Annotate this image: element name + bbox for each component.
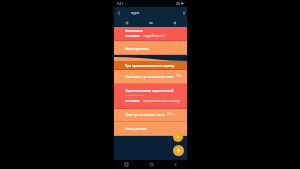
staticText: Идти до системных окон: [125, 112, 165, 116]
staticText: значение: [125, 99, 141, 103]
staticText: 4G: [176, 2, 180, 6]
staticText: Приостановить переменной: [125, 88, 174, 92]
button[interactable]: Play: [173, 132, 183, 142]
button[interactable]: Повторить до системных окон: [114, 70, 187, 84]
button[interactable]: Три прикосновения к экрану: [114, 61, 187, 70]
staticText: Всего данных: [125, 46, 149, 50]
staticText: прикосновение к экрану: [143, 99, 180, 103]
button[interactable]: Recents: [114, 160, 139, 169]
button[interactable]: Идти до системных окон: [114, 109, 187, 122]
button[interactable]: More options: [181, 7, 187, 18]
staticText: 13 с: [176, 74, 182, 78]
button[interactable]: Всего данных: [114, 41, 187, 55]
staticText: значение: [125, 34, 141, 38]
staticText: Три прикосновения к экрану: [125, 63, 175, 67]
button[interactable]: Add: [173, 145, 184, 156]
staticText: Повторить до системных окон: [125, 74, 174, 78]
button[interactable]: Заголовок: [114, 27, 187, 41]
staticText: Заголовок: [125, 28, 143, 32]
button[interactable]: Back: [114, 7, 123, 18]
button[interactable]: Всего данных: [114, 122, 187, 136]
staticText: 13 с: [167, 112, 173, 116]
button[interactable]: Pause: [114, 18, 139, 27]
button[interactable]: Приостановить переменной: [114, 84, 187, 109]
staticText: курс: [131, 10, 140, 15]
button[interactable]: Volume: [163, 18, 187, 27]
staticText: состояние, они: [125, 93, 144, 96]
button[interactable]: Back: [163, 160, 187, 169]
button[interactable]: Stop: [139, 18, 163, 27]
staticText: подробности 7: [143, 34, 166, 38]
staticText: Всего данных: [125, 126, 147, 130]
staticText: 9:41: [117, 2, 123, 6]
button[interactable]: Home: [139, 160, 163, 169]
